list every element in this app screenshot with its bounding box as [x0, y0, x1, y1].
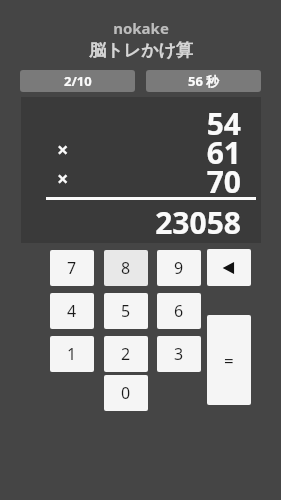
staticText: 5	[121, 300, 131, 322]
button[interactable]: Backspace	[207, 249, 251, 286]
staticText: 8	[121, 257, 131, 279]
button[interactable]: 1	[50, 336, 94, 372]
staticText: 1	[67, 343, 77, 365]
staticText: 61	[206, 132, 241, 166]
button[interactable]: =	[207, 315, 251, 405]
staticText: ×	[57, 136, 69, 163]
button[interactable]: 3	[157, 336, 201, 372]
staticText: 2/10	[64, 72, 92, 90]
staticText: =	[224, 349, 234, 372]
button[interactable]: 56 秒	[146, 70, 261, 92]
staticText: 脳トレかけ算	[89, 40, 193, 61]
staticText: 70	[206, 161, 241, 195]
staticText: 54	[206, 103, 241, 137]
staticText: nokake	[113, 18, 169, 38]
staticText: 6	[174, 300, 184, 322]
button[interactable]: 7	[50, 250, 94, 286]
staticText: ×	[57, 165, 69, 192]
button[interactable]: 5	[104, 293, 148, 329]
staticText: 7	[67, 257, 77, 279]
staticText: 9	[174, 257, 184, 279]
staticText: 23058	[155, 202, 241, 238]
button[interactable]: 9	[157, 250, 201, 286]
staticText: 0	[121, 382, 131, 404]
staticText: 56 秒	[188, 72, 220, 90]
button[interactable]: 6	[157, 293, 201, 329]
staticText: 3	[174, 343, 184, 365]
button[interactable]: 2	[104, 336, 148, 372]
button[interactable]: 8	[104, 250, 148, 286]
staticText: 2	[121, 343, 131, 365]
button[interactable]: 0	[104, 375, 148, 411]
button[interactable]: 4	[50, 293, 94, 329]
button[interactable]: 2/10	[20, 70, 135, 92]
staticText: 4	[67, 300, 77, 322]
